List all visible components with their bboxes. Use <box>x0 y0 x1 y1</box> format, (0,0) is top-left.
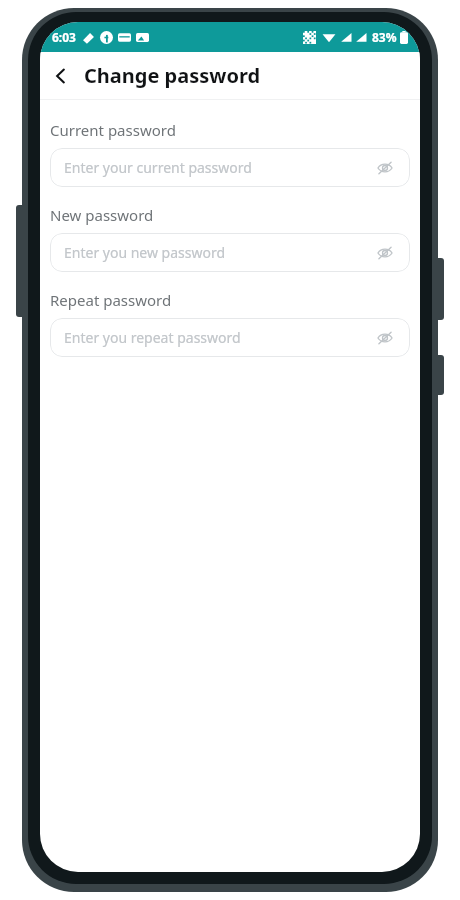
staticText: Enter you repeat password <box>64 328 374 347</box>
staticText: Current password <box>50 120 176 140</box>
button[interactable]: Back <box>44 59 78 93</box>
staticText: Change password <box>84 62 261 89</box>
staticText: Repeat password <box>50 290 172 310</box>
button[interactable]: Enter you new password <box>50 233 410 272</box>
button[interactable]: Show password <box>374 242 396 264</box>
staticText: New password <box>50 205 154 225</box>
button[interactable]: Enter your current password <box>50 148 410 187</box>
staticText: 6:03 <box>52 29 76 45</box>
button[interactable]: Show password <box>374 157 396 179</box>
button[interactable]: Enter you repeat password <box>50 318 410 357</box>
button[interactable]: Show password <box>374 327 396 349</box>
staticText: Enter your current password <box>64 158 374 177</box>
staticText: Enter you new password <box>64 243 374 262</box>
staticText: 83% <box>372 29 397 45</box>
